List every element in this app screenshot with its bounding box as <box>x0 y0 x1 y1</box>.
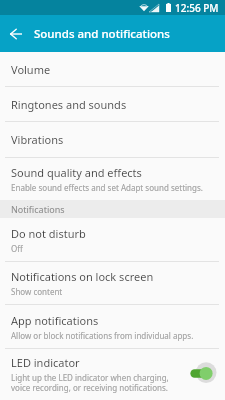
staticText: Notifications <box>11 203 65 215</box>
staticText: Do not disturb <box>11 226 86 241</box>
staticText: Volume <box>11 62 51 77</box>
button[interactable]: Sound quality and effects <box>0 158 225 200</box>
button[interactable]: LED indicator toggle <box>189 360 222 389</box>
button[interactable]: Navigate up <box>4 15 27 52</box>
staticText: Sounds and notifications <box>34 26 170 42</box>
button[interactable]: Vibrations <box>0 122 225 157</box>
button[interactable]: Ringtones and sounds <box>0 87 225 121</box>
button[interactable]: Notifications on lock screen <box>0 262 225 304</box>
staticText: Light up the LED indicator when charging… <box>11 372 169 394</box>
button[interactable]: LED indicator <box>0 349 225 400</box>
button[interactable]: Volume <box>0 52 225 86</box>
staticText: Show content <box>11 286 63 297</box>
staticText: Notifications on lock screen <box>11 269 154 284</box>
button[interactable]: Do not disturb <box>0 218 225 261</box>
staticText: Enable sound effects and set Adapt sound… <box>11 182 203 193</box>
staticText: 12:56 PM <box>175 1 219 15</box>
staticText: Allow or block notifications from indivi… <box>11 330 194 341</box>
staticText: Off <box>11 243 23 254</box>
staticText: App notifications <box>11 313 99 328</box>
button[interactable]: App notifications <box>0 305 225 348</box>
staticText: LED indicator <box>11 355 80 370</box>
staticText: Sound quality and effects <box>11 165 142 180</box>
staticText: Ringtones and sounds <box>11 97 127 112</box>
staticText: Vibrations <box>11 132 64 147</box>
